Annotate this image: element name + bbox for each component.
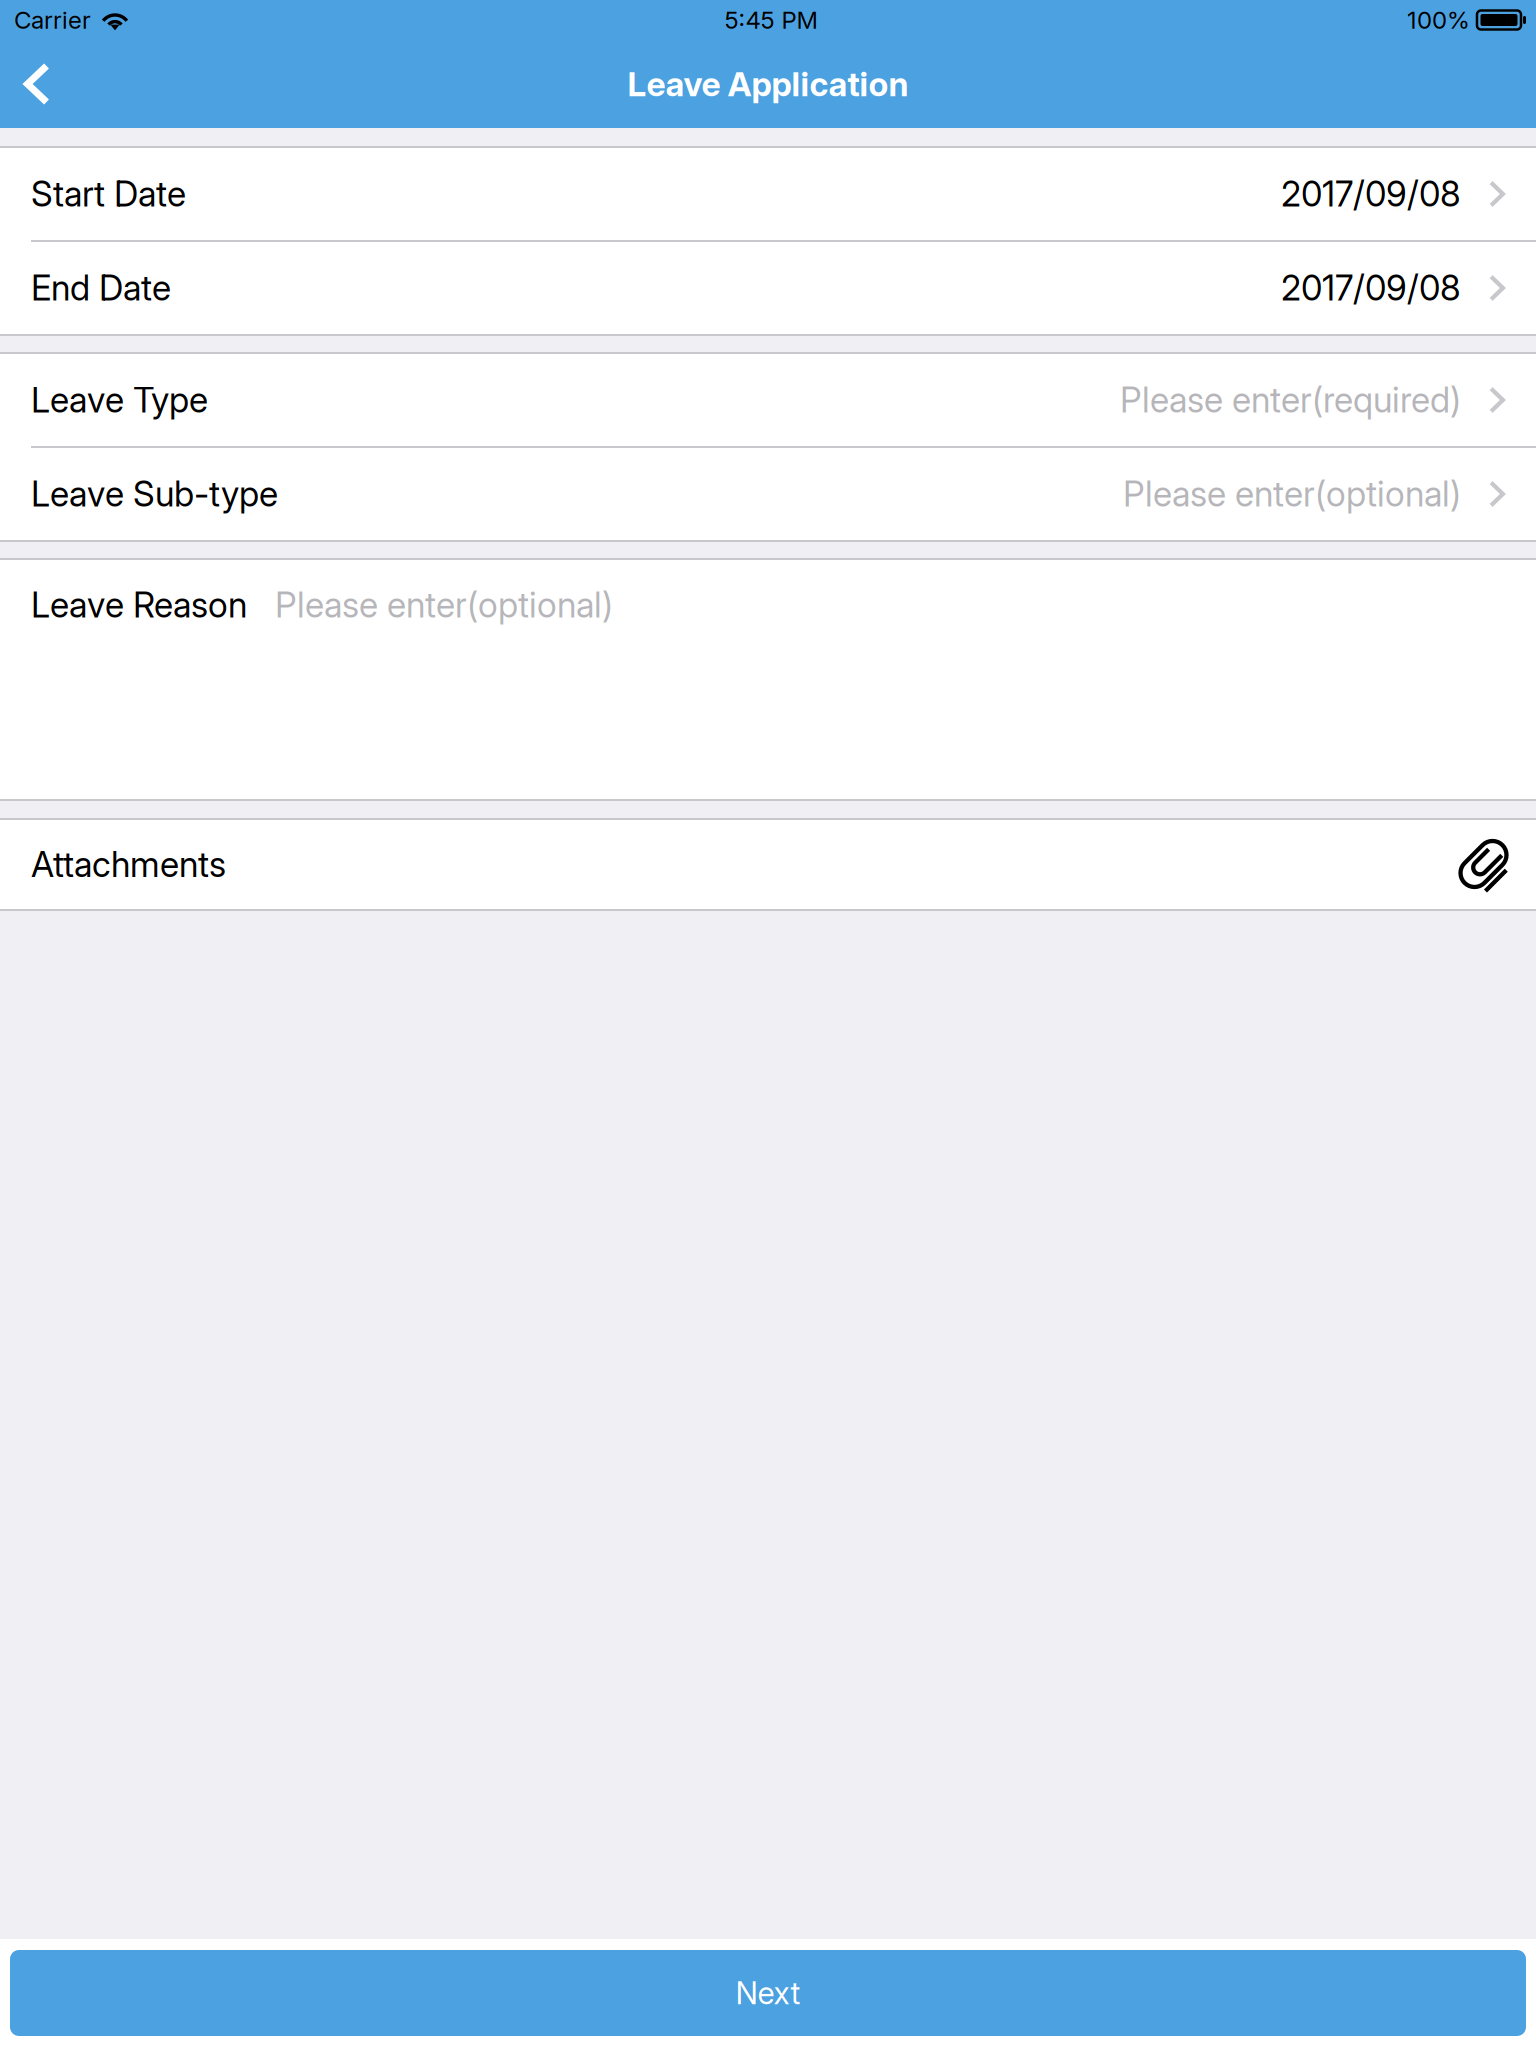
staticText: End Date [31,267,171,309]
staticText: Next [735,1974,800,2011]
button[interactable]: Start Date [0,148,1536,240]
staticText: Attachments [31,843,226,885]
button[interactable]: Leave Sub-type [0,448,1536,540]
staticText: Please enter(optional) [1123,473,1461,515]
staticText: 100% [1407,5,1470,34]
staticText: 5:45 PM [724,5,817,34]
staticText: Leave Reason [31,584,247,626]
button[interactable]: End Date [0,242,1536,334]
button[interactable]: Next [10,1950,1526,2036]
staticText: Leave Type [31,379,208,421]
staticText: 2017/09/08 [1281,267,1461,309]
button[interactable]: Back [0,40,76,128]
button[interactable]: Leave Type [0,354,1536,446]
staticText: Carrier [14,5,91,34]
staticText: Leave Sub-type [31,473,278,515]
staticText: Please enter(required) [1120,379,1461,421]
button[interactable]: Leave Reason [0,560,1536,799]
button[interactable]: Attachments [0,820,1536,909]
staticText: 2017/09/08 [1281,173,1461,215]
staticText: Leave Application [627,64,908,104]
staticText: Start Date [31,173,186,215]
staticText: Please enter(optional) [275,584,613,626]
